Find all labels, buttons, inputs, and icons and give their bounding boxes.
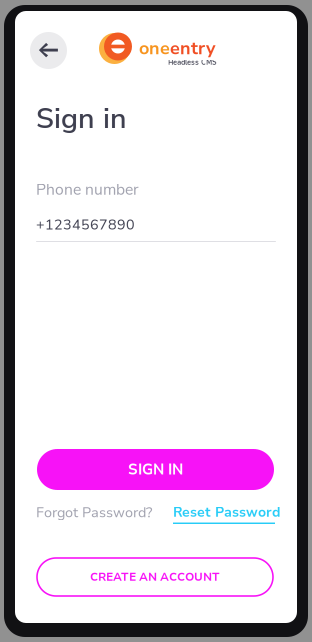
- staticText: Sign in: [36, 99, 127, 138]
- staticText: Forgot Password?: [36, 503, 152, 522]
- staticText: Phone number: [36, 179, 139, 200]
- staticText: Headless CMS: [168, 58, 217, 67]
- staticText: +1234567890: [36, 215, 135, 234]
- button[interactable]: CREATE AN ACCOUNT: [37, 558, 273, 596]
- staticText: SIGN IN: [128, 459, 183, 480]
- staticText: entry: [170, 36, 215, 61]
- button[interactable]: Reset Password: [173, 503, 283, 525]
- staticText: one: [139, 36, 170, 61]
- button[interactable]: Back: [30, 32, 67, 69]
- button[interactable]: SIGN IN: [37, 449, 274, 490]
- staticText: CREATE AN ACCOUNT: [90, 569, 220, 585]
- staticText: Reset Password: [173, 503, 281, 522]
